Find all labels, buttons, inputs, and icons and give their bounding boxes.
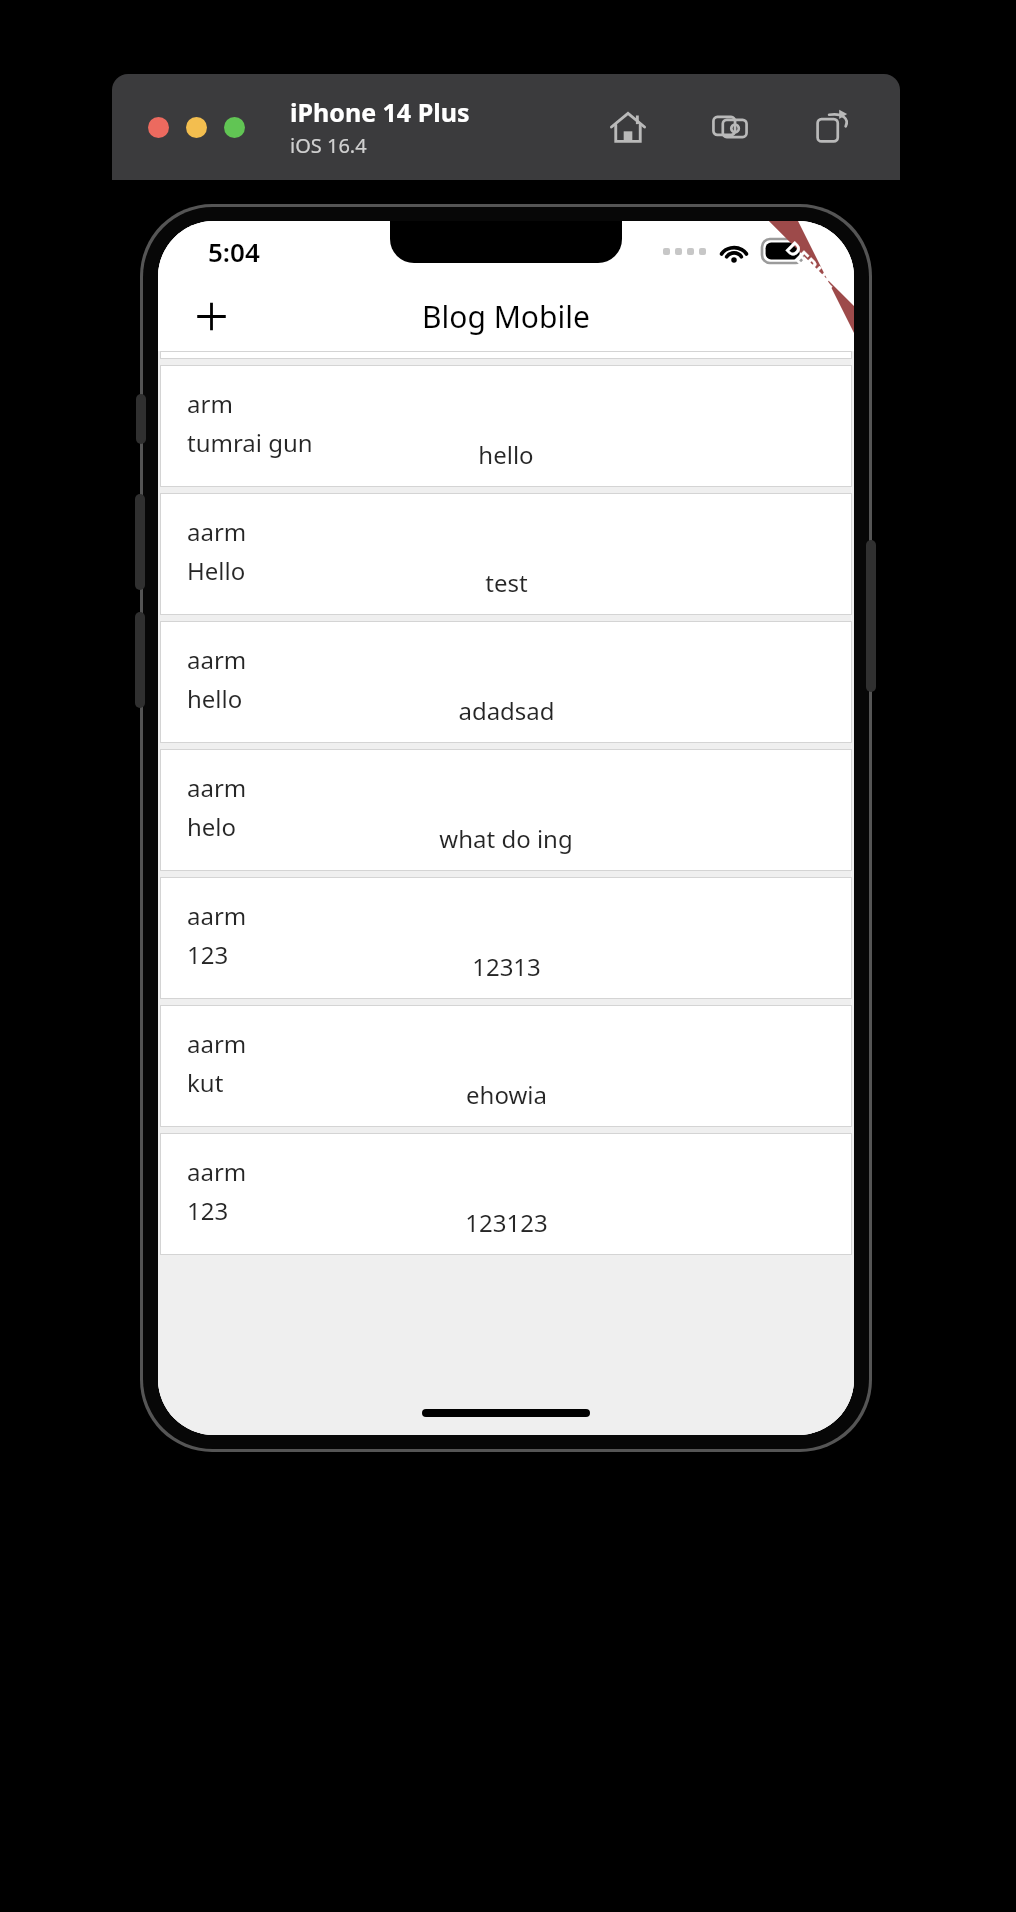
staticText: 5:04 [208, 234, 260, 269]
staticText: adadsad [458, 694, 555, 727]
button[interactable]: aarm [160, 749, 852, 871]
staticText: Blog Mobile [422, 296, 590, 337]
button[interactable]: Screenshot [706, 103, 754, 151]
staticText: iOS 16.4 [290, 132, 367, 159]
button[interactable]: aarm [160, 877, 852, 999]
staticText: test [485, 566, 528, 599]
staticText: aarm [187, 771, 247, 804]
staticText: ehowia [466, 1078, 547, 1111]
staticText: hello [187, 682, 243, 715]
staticText: aarm [187, 515, 247, 548]
staticText: iPhone 14 Plus [290, 95, 470, 129]
staticText: aarm [187, 1027, 247, 1060]
button[interactable]: aarm [160, 621, 852, 743]
staticText: arm [187, 387, 233, 420]
staticText: 12313 [472, 950, 541, 983]
staticText: hello [478, 438, 534, 471]
staticText: 123123 [465, 1206, 548, 1239]
staticText: helo [187, 810, 237, 843]
staticText: kut [187, 1066, 224, 1099]
button[interactable]: Rotate [808, 103, 856, 151]
staticText: 123 [187, 938, 229, 971]
button[interactable]: Minimize [186, 117, 207, 138]
staticText: tumrai gun [187, 426, 313, 459]
button[interactable]: aarm [160, 493, 852, 615]
staticText: Hello [187, 554, 246, 587]
button[interactable]: arm [160, 365, 852, 487]
staticText: aarm [187, 643, 247, 676]
button[interactable]: aarm [160, 1133, 852, 1255]
staticText: what do ing [439, 822, 573, 855]
staticText: 123 [187, 1194, 229, 1227]
staticText: DEBUG [780, 236, 842, 297]
staticText: aarm [187, 1155, 247, 1188]
button[interactable]: Add post [182, 287, 240, 345]
button[interactable]: Zoom [224, 117, 245, 138]
button[interactable]: Close [148, 117, 169, 138]
button[interactable]: aarm [160, 1005, 852, 1127]
button[interactable]: Home [604, 103, 652, 151]
staticText: aarm [187, 899, 247, 932]
